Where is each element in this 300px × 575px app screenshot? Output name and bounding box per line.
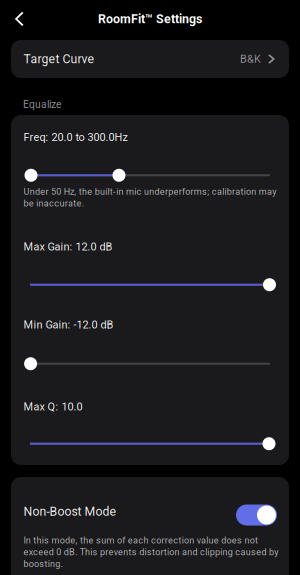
staticText: Non-Boost Mode (23, 504, 116, 519)
staticText: Min Gain: -12.0 dB (23, 318, 113, 331)
staticText: Max Q: 10.0 (23, 400, 82, 413)
staticText: Under 50 Hz, the built-in mic underperfo… (23, 186, 276, 197)
staticText: exceed 0 dB. This prevents distortion an… (23, 547, 278, 557)
staticText: Freq: 20.0 to 300.0Hz (23, 131, 127, 144)
button[interactable]: Non-Boost Mode (236, 497, 277, 525)
staticText: RoomFit™ Settings (98, 12, 202, 26)
button[interactable]: Back (0, 0, 34, 38)
staticText: In this mode, the sum of each correction… (23, 535, 258, 546)
button[interactable]: Target Curve (11, 40, 289, 78)
staticText: Target Curve (23, 52, 94, 66)
staticText: boosting. (23, 559, 62, 569)
staticText: Equalize (23, 98, 61, 110)
staticText: B&K (240, 53, 261, 65)
staticText: be inaccurate. (23, 198, 84, 209)
staticText: Max Gain: 12.0 dB (23, 240, 112, 253)
